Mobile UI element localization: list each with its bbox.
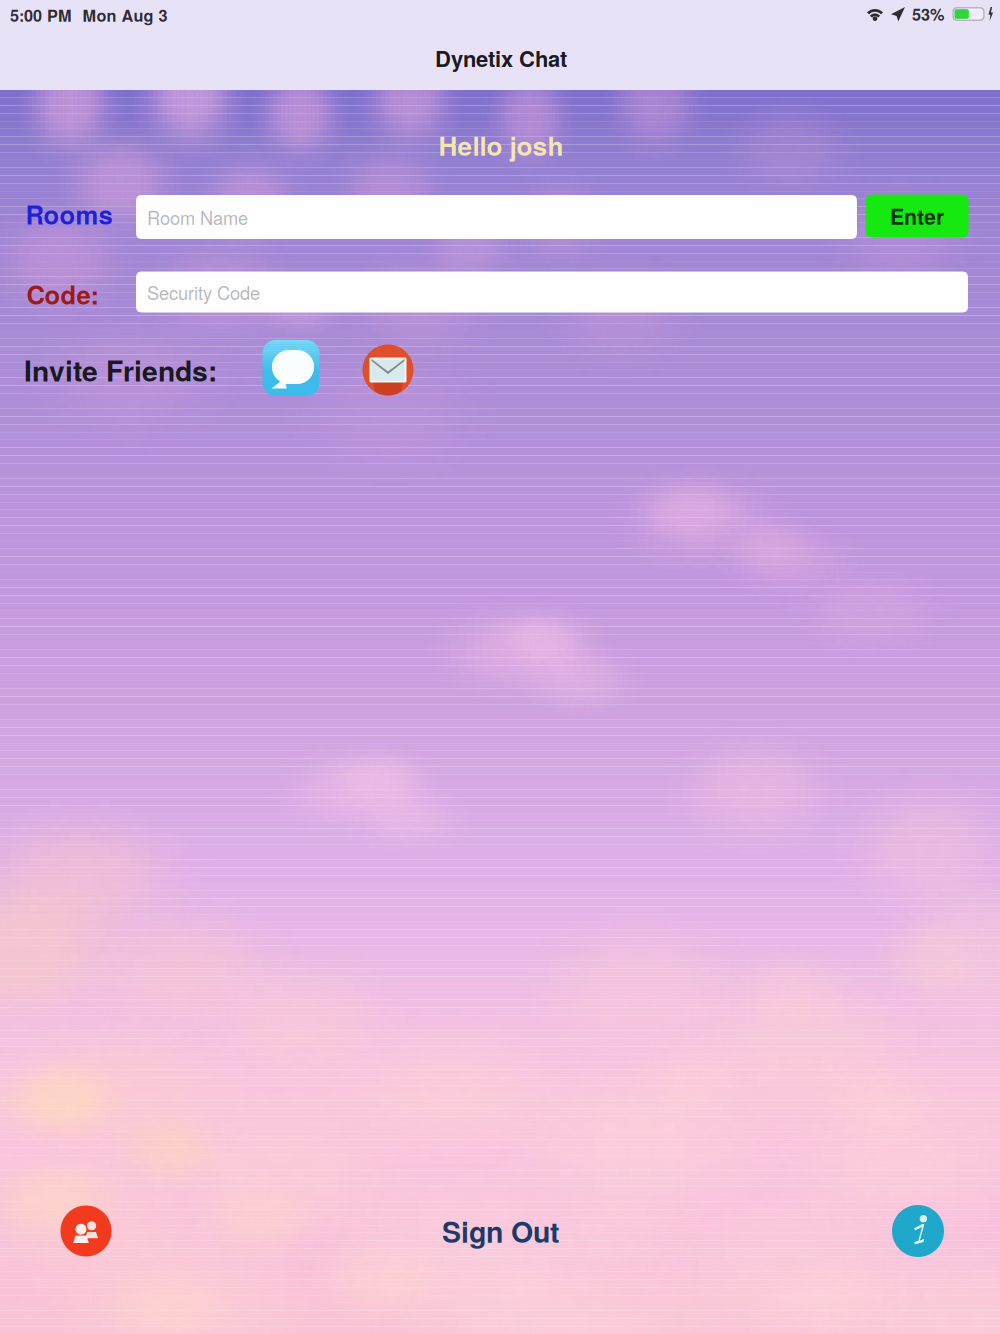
staticText: Code: xyxy=(26,276,99,312)
staticText: Dynetix Chat xyxy=(435,42,567,74)
button[interactable]: Contacts xyxy=(60,1205,112,1257)
staticText: Invite Friends: xyxy=(24,350,217,390)
button[interactable]: Invite by Mail xyxy=(360,342,416,398)
button[interactable]: Enter xyxy=(865,194,968,237)
staticText: Enter xyxy=(890,201,944,231)
staticText: Security Code xyxy=(147,279,260,305)
staticText: Room Name xyxy=(147,204,248,230)
staticText: Rooms xyxy=(25,196,112,232)
button[interactable]: Sign Out xyxy=(442,1211,560,1251)
staticText: Sign Out xyxy=(442,1211,560,1251)
staticText: Hello josh xyxy=(438,126,563,164)
staticText: Mon Aug 3 xyxy=(82,3,167,27)
staticText: 5:00 PM xyxy=(10,3,72,27)
button[interactable]: Invite by Message xyxy=(262,339,320,397)
button[interactable]: Info xyxy=(891,1204,945,1258)
staticText: 53% xyxy=(912,2,944,26)
